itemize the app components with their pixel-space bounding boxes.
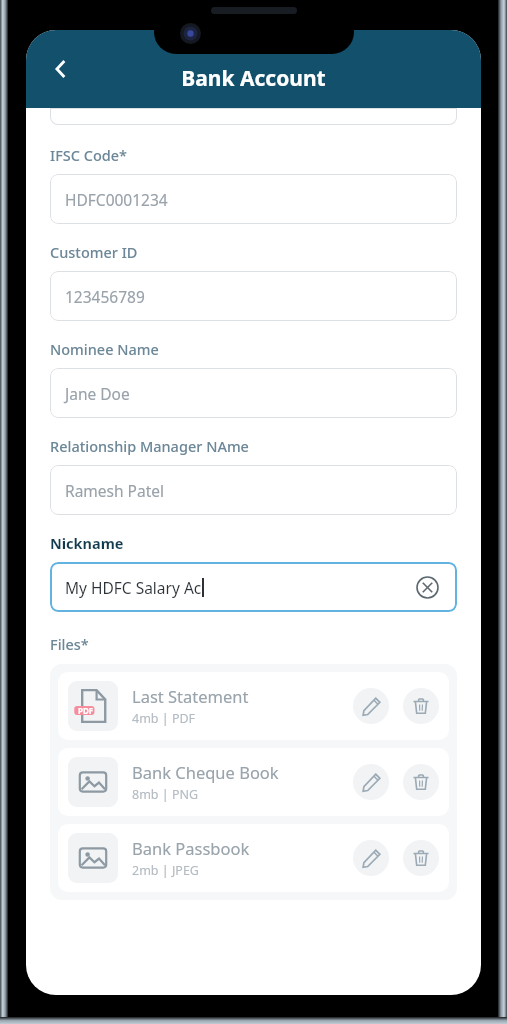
staticText: PDF: [78, 705, 94, 716]
staticText: Relationship Manager NAme: [50, 436, 249, 456]
staticText: Nominee Name: [50, 339, 159, 359]
button[interactable]: Delete: [403, 764, 439, 800]
button[interactable]: PDF: [58, 672, 449, 740]
button[interactable]: Back: [40, 48, 82, 90]
button[interactable]: Bank Cheque Book: [58, 748, 449, 816]
staticText: HDFC0001234: [65, 189, 168, 210]
staticText: Customer ID: [50, 242, 138, 262]
button[interactable]: HDFC0001234: [50, 174, 457, 224]
staticText: IFSC Code*: [50, 145, 128, 165]
button[interactable]: Jane Doe: [50, 368, 457, 418]
staticText: Ramesh Patel: [65, 480, 165, 501]
staticText: My HDFC Salary Ac: [65, 577, 202, 598]
button[interactable]: My HDFC Salary Ac: [50, 562, 457, 612]
staticText: 2mb | JPEG: [132, 862, 199, 879]
staticText: Jane Doe: [65, 383, 130, 404]
button[interactable]: Delete: [403, 688, 439, 724]
button[interactable]: Edit: [353, 764, 389, 800]
staticText: Last Statement: [132, 685, 249, 707]
staticText: Bank Cheque Book: [132, 761, 279, 783]
button[interactable]: Delete: [403, 840, 439, 876]
button[interactable]: Edit: [353, 688, 389, 724]
button[interactable]: Ramesh Patel: [50, 465, 457, 515]
staticText: 4mb | PDF: [132, 710, 196, 727]
button[interactable]: 123456789: [50, 271, 457, 321]
button[interactable]: Bank Passbook: [58, 824, 449, 892]
staticText: 8mb | PNG: [132, 786, 199, 803]
button[interactable]: Clear text: [412, 572, 442, 602]
staticText: Bank Passbook: [132, 837, 250, 859]
staticText: 123456789: [65, 286, 145, 307]
button[interactable]: Edit: [353, 840, 389, 876]
staticText: Files*: [50, 634, 89, 654]
staticText: Bank Account: [181, 64, 326, 93]
staticText: Nickname: [50, 533, 124, 553]
